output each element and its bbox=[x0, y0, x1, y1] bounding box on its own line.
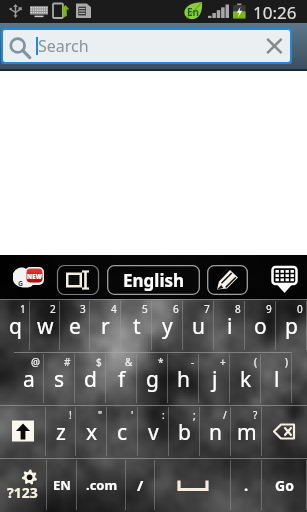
button[interactable]: 5 bbox=[121, 299, 152, 352]
staticText: 5 bbox=[142, 302, 148, 316]
staticText: 0 bbox=[297, 302, 303, 316]
button[interactable]: ! bbox=[46, 405, 76, 458]
staticText: NEW bbox=[27, 273, 43, 281]
staticText: @ bbox=[31, 355, 40, 369]
button[interactable]: Space bbox=[155, 458, 231, 512]
staticText: o bbox=[254, 312, 267, 341]
staticText: $ bbox=[96, 355, 102, 369]
staticText: ! bbox=[69, 408, 72, 422]
staticText: 6 bbox=[173, 302, 179, 316]
button[interactable]: ? bbox=[231, 405, 262, 458]
staticText: & bbox=[125, 355, 133, 369]
button[interactable]: 3 bbox=[60, 299, 90, 352]
button[interactable]: Handwriting bbox=[207, 265, 248, 295]
staticText: w bbox=[37, 312, 54, 341]
staticText: 10:26 bbox=[253, 1, 297, 24]
button[interactable]: ' bbox=[107, 405, 138, 458]
staticText: + bbox=[220, 355, 226, 369]
button[interactable]: Hide keyboard bbox=[262, 265, 307, 295]
button[interactable]: ( bbox=[230, 352, 261, 405]
button[interactable]: / bbox=[200, 405, 231, 458]
button[interactable]: Settings and symbols bbox=[0, 458, 47, 512]
staticText: y bbox=[162, 312, 173, 341]
staticText: 3 bbox=[80, 302, 86, 316]
button[interactable]: 4 bbox=[90, 299, 121, 352]
staticText: m bbox=[237, 418, 257, 447]
staticText: s bbox=[54, 365, 65, 394]
staticText: # bbox=[64, 355, 71, 369]
staticText: * bbox=[158, 355, 164, 369]
staticText: ( bbox=[254, 355, 257, 369]
button[interactable]: + bbox=[199, 352, 230, 405]
button[interactable]: 7 bbox=[183, 299, 214, 352]
staticText: a bbox=[23, 365, 35, 394]
staticText: English bbox=[123, 269, 185, 292]
button[interactable]: One handed keyboard bbox=[57, 265, 99, 295]
staticText: ' bbox=[131, 408, 134, 422]
button[interactable]: " bbox=[76, 405, 107, 458]
button[interactable]: @ bbox=[14, 352, 44, 405]
staticText: f bbox=[118, 365, 126, 394]
button[interactable]: # bbox=[44, 352, 75, 405]
staticText: 2 bbox=[50, 302, 56, 316]
button[interactable]: . bbox=[231, 458, 262, 512]
button[interactable]: & bbox=[106, 352, 137, 405]
staticText: G bbox=[18, 279, 24, 289]
button[interactable]: * bbox=[137, 352, 168, 405]
staticText: 7 bbox=[204, 302, 210, 316]
staticText: e bbox=[69, 312, 81, 341]
staticText: En bbox=[187, 5, 200, 19]
button[interactable]: / bbox=[126, 458, 155, 512]
button[interactable]: Shift bbox=[0, 405, 46, 458]
staticText: n bbox=[209, 418, 222, 447]
button[interactable]: : bbox=[138, 405, 169, 458]
staticText: 8 bbox=[235, 302, 241, 316]
staticText: u bbox=[192, 312, 205, 341]
button[interactable]: 9 bbox=[245, 299, 276, 352]
staticText: x bbox=[86, 418, 98, 447]
staticText: p bbox=[285, 312, 298, 341]
staticText: / bbox=[223, 408, 227, 422]
staticText: .com bbox=[86, 476, 118, 494]
button[interactable]: 1 bbox=[0, 299, 30, 352]
button[interactable]: ; bbox=[169, 405, 200, 458]
button[interactable]: .com bbox=[77, 458, 126, 512]
staticText: - bbox=[191, 355, 195, 369]
staticText: 9 bbox=[266, 302, 272, 316]
staticText: ?123 bbox=[7, 483, 38, 502]
staticText: / bbox=[137, 475, 144, 495]
staticText: j bbox=[212, 365, 218, 394]
staticText: 4 bbox=[111, 302, 117, 316]
staticText: g bbox=[146, 365, 159, 394]
button[interactable]: $ bbox=[75, 352, 106, 405]
staticText: d bbox=[84, 365, 97, 394]
staticText: c bbox=[117, 418, 128, 447]
staticText: ? bbox=[253, 408, 258, 422]
button[interactable]: ) bbox=[261, 352, 292, 405]
staticText: ; bbox=[193, 408, 196, 422]
staticText: k bbox=[240, 365, 252, 394]
button[interactable]: EN bbox=[47, 458, 77, 512]
staticText: EN bbox=[53, 476, 71, 494]
button[interactable]: - bbox=[168, 352, 199, 405]
staticText: r bbox=[101, 312, 110, 341]
button[interactable]: 6 bbox=[152, 299, 183, 352]
button[interactable]: 0 bbox=[276, 299, 307, 352]
staticText: t bbox=[133, 312, 141, 341]
button[interactable]: 2 bbox=[30, 299, 60, 352]
staticText: l bbox=[274, 365, 280, 394]
staticText: " bbox=[98, 408, 103, 422]
button[interactable]: Go bbox=[262, 458, 307, 512]
staticText: Search bbox=[38, 35, 89, 57]
button[interactable]: 8 bbox=[214, 299, 245, 352]
staticText: q bbox=[9, 312, 22, 341]
button[interactable]: Search bbox=[3, 30, 290, 62]
staticText: . bbox=[244, 475, 249, 495]
button[interactable]: Backspace bbox=[262, 405, 307, 458]
staticText: b bbox=[178, 418, 191, 447]
button[interactable]: English bbox=[107, 265, 200, 295]
staticText: v bbox=[148, 418, 159, 447]
staticText: : bbox=[162, 408, 165, 422]
staticText: h bbox=[177, 365, 190, 394]
staticText: z bbox=[56, 418, 66, 447]
